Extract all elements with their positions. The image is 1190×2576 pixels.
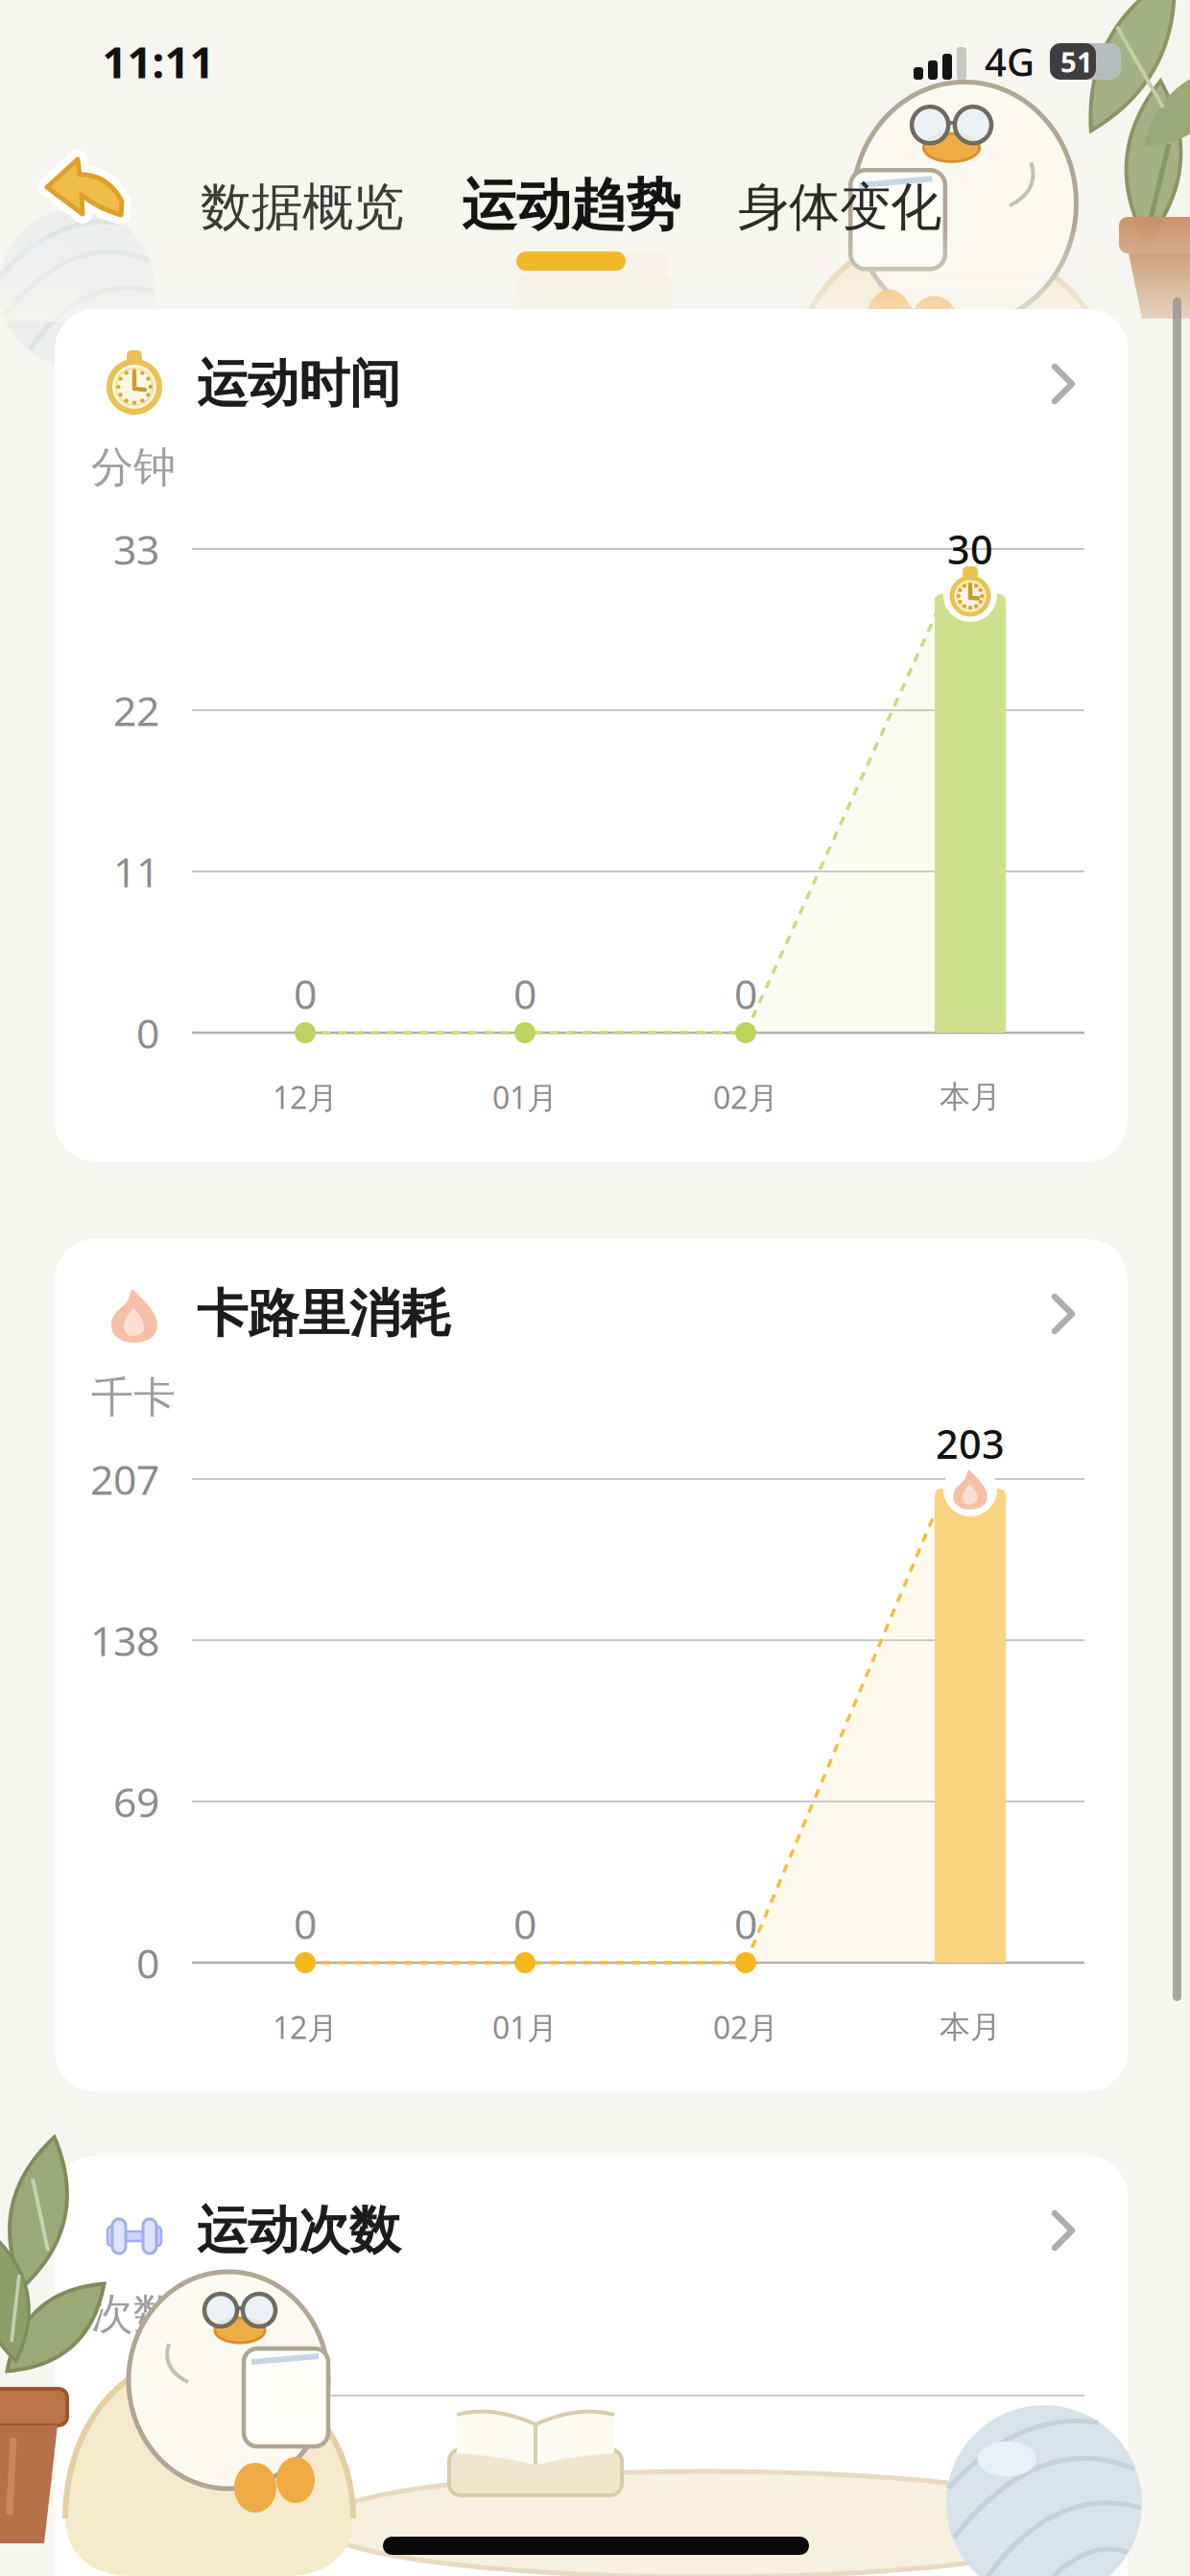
staticText: 203 (936, 1417, 1005, 1470)
button[interactable]: 卡路里消耗 (55, 1239, 1128, 2091)
staticText: 138 (90, 1613, 159, 1667)
staticText: 分钟 (91, 441, 176, 493)
staticText: 51 (1060, 43, 1093, 80)
button[interactable]: 数据概览 (130, 164, 475, 250)
staticText: 11 (113, 844, 159, 899)
staticText: 运动次数 (197, 2199, 400, 2262)
staticText: 0 (513, 966, 536, 1021)
staticText: 0 (294, 966, 317, 1021)
staticText: 02月 (713, 1077, 778, 1117)
staticText: 33 (113, 522, 159, 576)
staticText: 次数 (91, 2288, 176, 2340)
staticText: 0 (136, 1936, 159, 1990)
staticText: 0 (734, 966, 757, 1021)
button[interactable]: 运动次数 (55, 2156, 1128, 2576)
staticText: 0 (513, 1896, 536, 1951)
staticText: 69 (113, 1774, 159, 1829)
button[interactable]: 运动趋势 (379, 157, 763, 253)
staticText: 12月 (273, 2007, 338, 2047)
staticText: 运动时间 (197, 352, 400, 415)
staticText: 02月 (713, 2007, 778, 2047)
button[interactable]: 返回 (27, 131, 142, 247)
staticText: 22 (113, 683, 159, 737)
staticText: 千卡 (91, 1371, 176, 1423)
staticText: 0 (294, 1896, 317, 1951)
staticText: 01月 (492, 1077, 558, 1117)
staticText: 207 (90, 1452, 159, 1506)
staticText: 运动趋势 (462, 172, 680, 239)
button[interactable]: 身体变化 (667, 164, 1012, 250)
staticText: 12月 (273, 1077, 338, 1117)
staticText: 11:11 (102, 33, 214, 90)
button[interactable]: 运动时间 (55, 309, 1128, 1161)
staticText: 身体变化 (738, 176, 941, 239)
staticText: 0 (734, 1896, 757, 1951)
staticText: 数据概览 (201, 176, 404, 239)
staticText: 01月 (492, 2007, 558, 2047)
staticText: 4G (985, 36, 1035, 87)
staticText: 30 (947, 523, 993, 575)
staticText: 本月 (940, 2008, 1001, 2046)
staticText: 卡路里消耗 (197, 1282, 451, 1345)
staticText: 0 (136, 1006, 159, 1060)
staticText: 本月 (940, 1078, 1001, 1116)
